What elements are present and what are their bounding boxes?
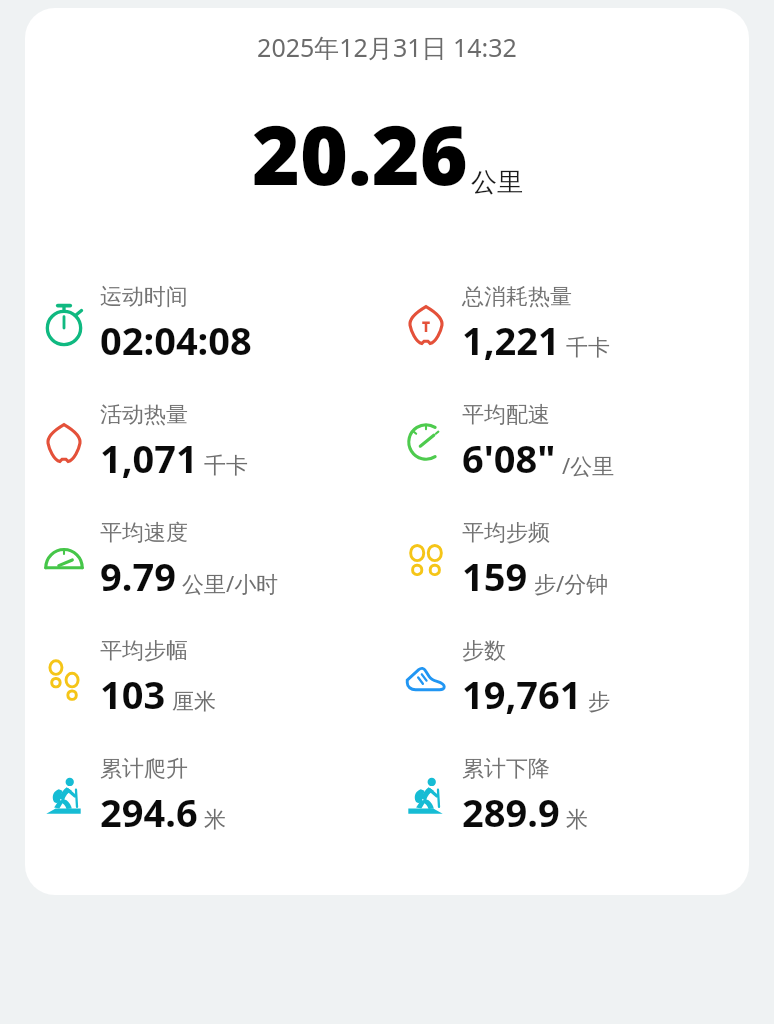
button[interactable]: 平均配速 — [387, 383, 749, 501]
other: 活动热量 — [39, 417, 89, 467]
staticText: 米 — [566, 806, 588, 834]
button[interactable]: 总消耗热量 — [387, 265, 749, 383]
staticText: 总消耗热量 — [462, 283, 572, 311]
staticText: 公里 — [471, 166, 523, 199]
button[interactable]: 步数 — [387, 619, 749, 737]
staticText: 活动热量 — [100, 401, 188, 429]
staticText: 米 — [204, 806, 226, 834]
staticText: 千卡 — [204, 452, 248, 480]
other: 步数 — [401, 653, 451, 703]
other: 平均步幅 — [39, 653, 89, 703]
staticText: 1,221 — [462, 314, 560, 366]
button[interactable]: 平均步幅 — [25, 619, 387, 737]
staticText: 103 — [100, 668, 166, 720]
button[interactable]: 活动热量 — [25, 383, 387, 501]
staticText: 千卡 — [566, 334, 610, 362]
other: 平均速度 — [39, 535, 89, 585]
staticText: /公里 — [562, 450, 615, 480]
staticText: 20.26 — [252, 97, 468, 209]
other: 运动时间 — [39, 299, 89, 349]
staticText: 294.6 — [100, 786, 198, 838]
staticText: 平均步幅 — [100, 637, 188, 665]
staticText: 厘米 — [172, 688, 216, 716]
staticText: 累计下降 — [462, 755, 550, 783]
staticText: 公里/小时 — [182, 568, 279, 598]
staticText: 步 — [588, 688, 610, 716]
staticText: 2025年12月31日 14:32 — [257, 30, 517, 64]
other: 平均配速 — [401, 417, 451, 467]
staticText: 6'08" — [462, 432, 556, 484]
staticText: 1,071 — [100, 432, 198, 484]
staticText: 9.79 — [100, 550, 176, 602]
staticText: 平均步频 — [462, 519, 550, 547]
other: 总消耗热量 — [401, 299, 451, 349]
staticText: 平均配速 — [462, 401, 550, 429]
button[interactable]: 平均步频 — [387, 501, 749, 619]
other: 平均步频 — [401, 535, 451, 585]
button[interactable]: 累计下降 — [387, 737, 749, 855]
button[interactable]: 运动时间 — [25, 265, 387, 383]
staticText: 步数 — [462, 637, 506, 665]
staticText: 289.9 — [462, 786, 560, 838]
staticText: 步/分钟 — [534, 568, 609, 598]
staticText: 累计爬升 — [100, 755, 188, 783]
other: 累计下降 — [401, 771, 451, 821]
staticText: 平均速度 — [100, 519, 188, 547]
staticText: 02:04:08 — [100, 314, 252, 366]
staticText: 运动时间 — [100, 283, 188, 311]
staticText: 19,761 — [462, 668, 582, 720]
button[interactable]: 累计爬升 — [25, 737, 387, 855]
button[interactable]: 平均速度 — [25, 501, 387, 619]
staticText: 159 — [462, 550, 528, 602]
other: 累计爬升 — [39, 771, 89, 821]
